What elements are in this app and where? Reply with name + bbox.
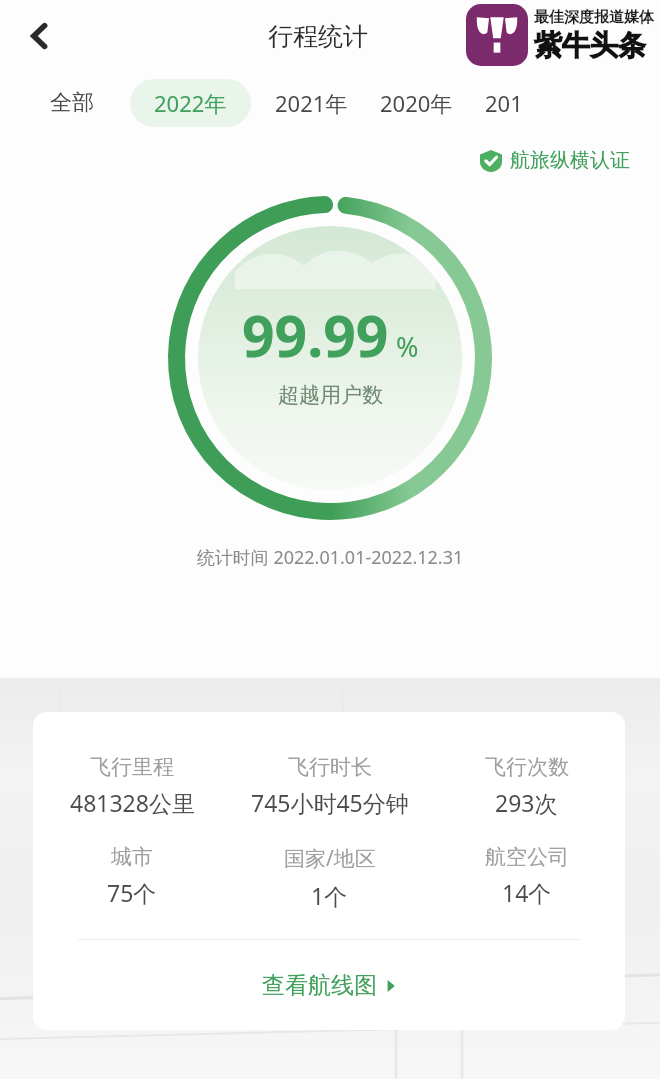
staticText: 1个 [311,880,348,911]
staticText: 745小时45分钟 [251,787,409,818]
staticText: 最佳深度报道媒体 [534,8,654,27]
button[interactable]: 查看航线图 [33,940,625,1030]
staticText: 航旅纵横认证 [510,148,630,173]
button[interactable]: Back [16,12,64,60]
button[interactable]: 全部 [50,89,94,117]
staticText: 75个 [107,877,157,908]
button[interactable]: 2021年 [275,88,348,118]
staticText: 航空公司 [485,844,569,870]
staticText: % [396,328,419,365]
staticText: 293次 [495,787,558,818]
staticText: 14个 [502,877,552,908]
button[interactable]: 2020年 [380,88,453,118]
staticText: 国家/地区 [284,844,376,873]
staticText: 统计时间 2022.01.01-2022.12.31 [0,545,660,570]
staticText: 飞行次数 [485,754,569,780]
button[interactable]: 2022年 [130,79,251,127]
staticText: 行程统计 [268,21,368,52]
staticText: 城市 [111,844,153,870]
staticText: 飞行里程 [90,754,174,780]
staticText: 2022年 [154,88,227,118]
staticText: 超越用户数 [278,382,383,408]
staticText: 紫牛头条 [534,28,646,63]
staticText: 查看航线图 [262,971,377,1000]
button[interactable]: 201 [485,88,523,118]
staticText: 481328公里 [70,787,195,818]
staticText: 99.99 [242,296,389,374]
staticText: 飞行时长 [288,754,372,780]
